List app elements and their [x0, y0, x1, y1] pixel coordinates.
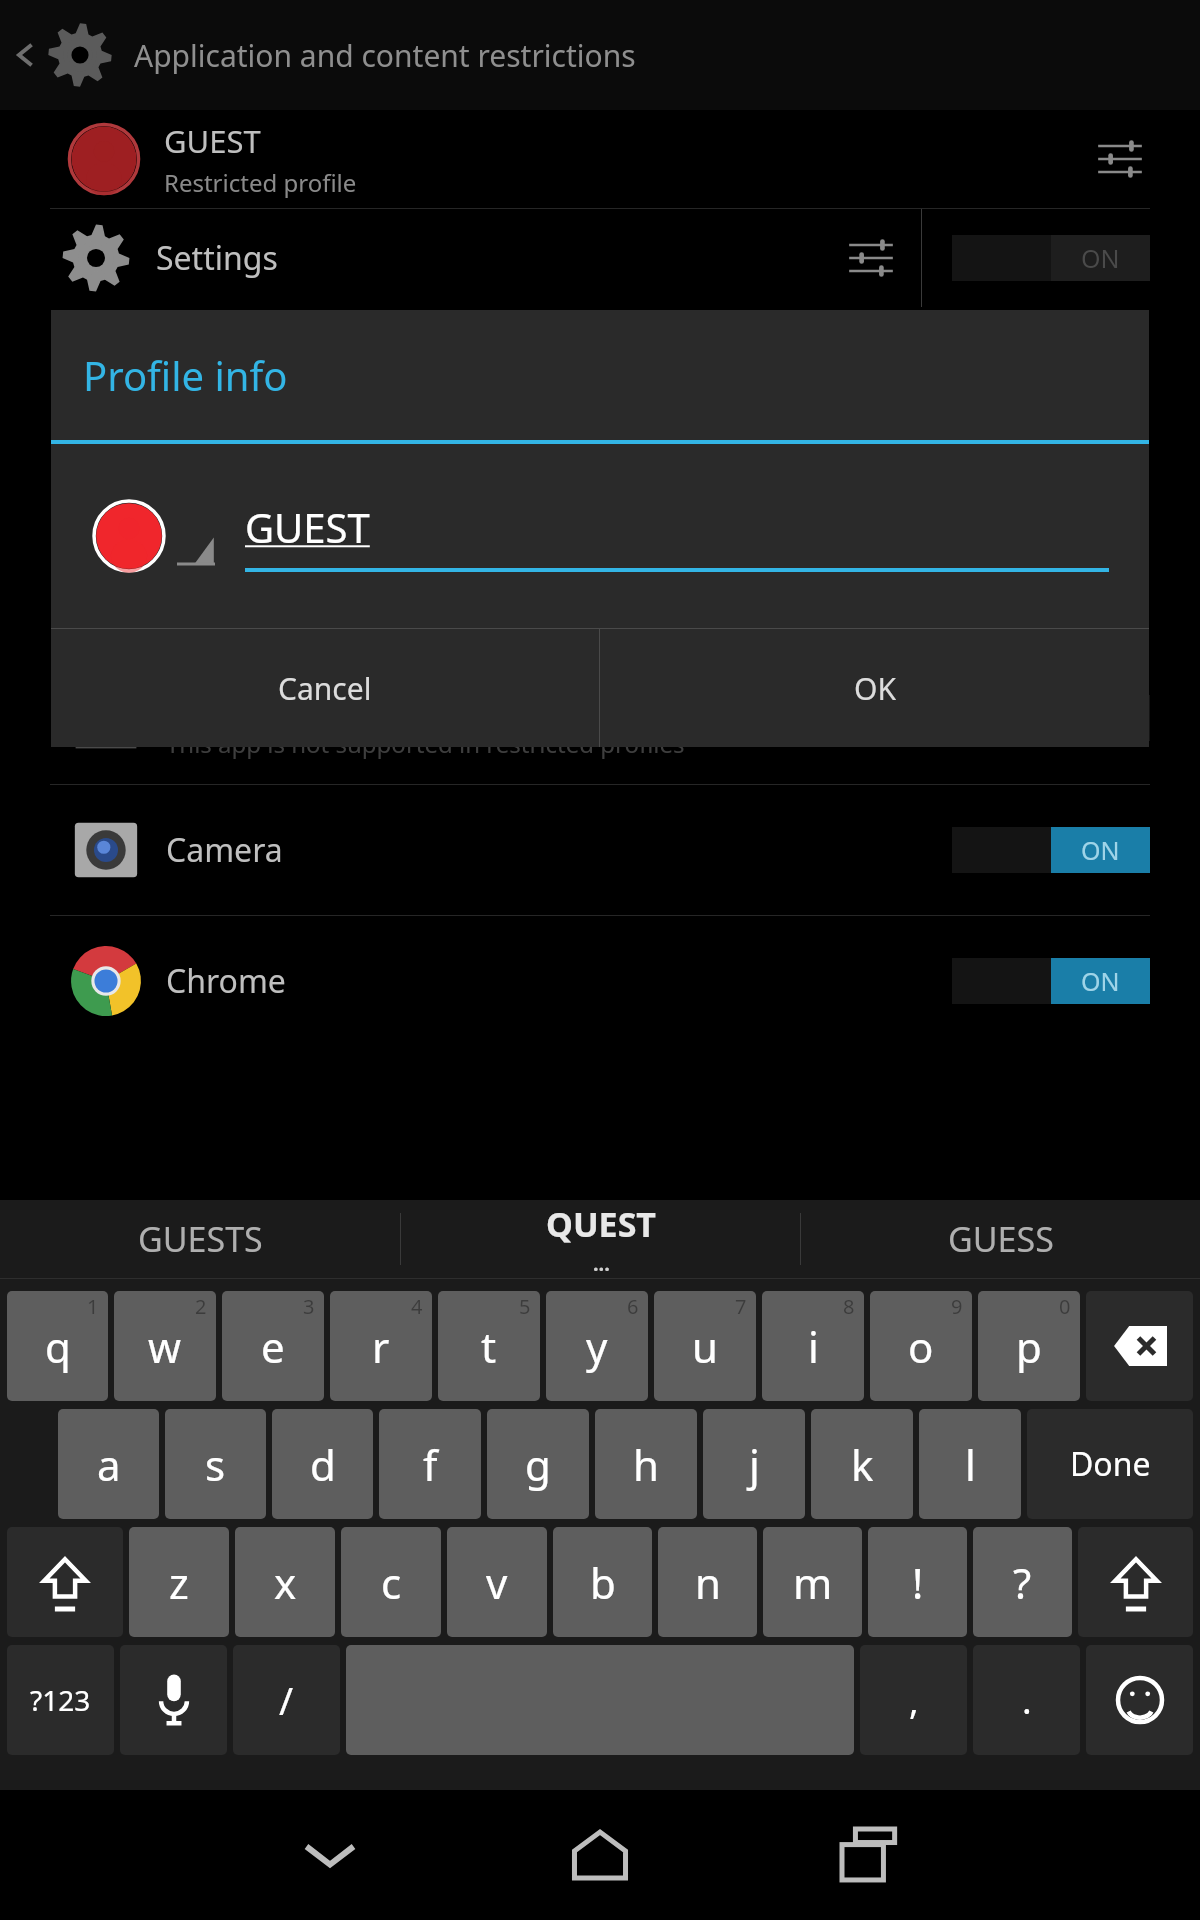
staticText: c: [381, 1554, 402, 1611]
button[interactable]: Shift: [1078, 1527, 1193, 1637]
staticText: v: [486, 1554, 508, 1611]
button[interactable]: Hide keyboard: [195, 1790, 465, 1920]
staticText: 5: [519, 1293, 531, 1320]
button[interactable]: Camera: [0, 785, 1200, 915]
button[interactable]: b: [553, 1527, 652, 1637]
button[interactable]: ON: [952, 958, 1150, 1004]
button[interactable]: QUEST: [401, 1200, 800, 1278]
staticText: Cancel: [278, 668, 372, 709]
button[interactable]: t: [438, 1291, 540, 1401]
staticText: ON: [1081, 241, 1120, 275]
button[interactable]: Home: [465, 1790, 735, 1920]
button[interactable]: y: [546, 1291, 648, 1401]
button[interactable]: GUEST: [0, 110, 1200, 208]
button[interactable]: Shift: [7, 1527, 123, 1637]
button[interactable]: n: [658, 1527, 757, 1637]
button[interactable]: Recent apps: [735, 1790, 1005, 1920]
staticText: Done: [1070, 1442, 1151, 1486]
button[interactable]: c: [341, 1527, 441, 1637]
button[interactable]: GUESS: [801, 1200, 1200, 1278]
staticText: 2: [195, 1293, 207, 1320]
button[interactable]: f: [379, 1409, 481, 1519]
button[interactable]: p: [978, 1291, 1080, 1401]
staticText: b: [590, 1554, 616, 1611]
staticText: y: [586, 1318, 608, 1375]
staticText: GUESS: [948, 1216, 1054, 1262]
button[interactable]: GUESTS: [0, 1200, 400, 1278]
staticText: .: [1022, 1676, 1032, 1725]
staticText: i: [808, 1318, 819, 1375]
staticText: 1: [87, 1293, 99, 1320]
staticText: /: [279, 1674, 294, 1726]
button[interactable]: OK: [600, 629, 1149, 747]
staticText: 7: [735, 1293, 747, 1320]
button[interactable]: ?123: [7, 1645, 114, 1755]
button[interactable]: i: [762, 1291, 864, 1401]
button[interactable]: l: [919, 1409, 1021, 1519]
button[interactable]: Calendar: [0, 652, 1200, 784]
staticText: 0: [1059, 1293, 1071, 1320]
button[interactable]: g: [487, 1409, 589, 1519]
staticText: l: [965, 1436, 976, 1493]
button[interactable]: m: [763, 1527, 862, 1637]
staticText: QUEST: [546, 1201, 656, 1247]
button[interactable]: a: [58, 1409, 159, 1519]
button[interactable]: Change photo: [91, 498, 167, 574]
staticText: k: [851, 1436, 874, 1493]
button[interactable]: k: [811, 1409, 913, 1519]
button[interactable]: ?: [973, 1527, 1072, 1637]
button[interactable]: ON: [952, 235, 1150, 281]
button[interactable]: Voice input: [120, 1645, 227, 1755]
button[interactable]: o: [870, 1291, 972, 1401]
other: Back: [10, 25, 40, 85]
button[interactable]: Back: [0, 0, 1200, 110]
button[interactable]: Backspace: [1086, 1291, 1193, 1401]
button[interactable]: Done: [1027, 1409, 1193, 1519]
button[interactable]: h: [595, 1409, 697, 1519]
staticText: h: [633, 1436, 659, 1493]
staticText: ?: [1013, 1554, 1032, 1611]
button[interactable]: !: [868, 1527, 967, 1637]
staticText: Calendar: [166, 677, 302, 721]
button[interactable]: j: [703, 1409, 805, 1519]
staticText: x: [274, 1554, 297, 1611]
button[interactable]: u: [654, 1291, 756, 1401]
button[interactable]: Settings: [0, 209, 1200, 307]
staticText: Camera: [166, 828, 283, 872]
staticText: t: [481, 1318, 497, 1375]
button[interactable]: x: [235, 1527, 335, 1637]
button[interactable]: s: [165, 1409, 266, 1519]
button[interactable]: ,: [860, 1645, 967, 1755]
button[interactable]: Cancel: [51, 629, 599, 747]
staticText: 8: [843, 1293, 855, 1320]
button[interactable]: d: [272, 1409, 373, 1519]
staticText: Application and content restrictions: [134, 35, 636, 76]
staticText: GUEST: [164, 120, 261, 162]
button[interactable]: r: [330, 1291, 432, 1401]
button[interactable]: v: [447, 1527, 547, 1637]
button[interactable]: w: [114, 1291, 216, 1401]
button[interactable]: z: [129, 1527, 229, 1637]
button[interactable]: /: [233, 1645, 340, 1755]
staticText: 3: [303, 1293, 315, 1320]
staticText: ...: [593, 1250, 610, 1277]
staticText: d: [310, 1436, 336, 1493]
staticText: ON: [1081, 833, 1120, 867]
staticText: e: [261, 1318, 285, 1375]
staticText: GUEST: [245, 500, 370, 554]
button[interactable]: Emoji: [1086, 1645, 1193, 1755]
button[interactable]: ON: [952, 827, 1150, 873]
button[interactable]: .: [973, 1645, 1080, 1755]
staticText: This app is not supported in restricted …: [166, 727, 685, 760]
staticText: p: [1016, 1318, 1042, 1375]
button[interactable]: q: [7, 1291, 108, 1401]
button[interactable]: Chrome: [0, 916, 1200, 1046]
staticText: o: [908, 1318, 934, 1375]
staticText: ,: [909, 1676, 919, 1725]
button[interactable]: e: [222, 1291, 324, 1401]
staticText: f: [423, 1436, 438, 1493]
